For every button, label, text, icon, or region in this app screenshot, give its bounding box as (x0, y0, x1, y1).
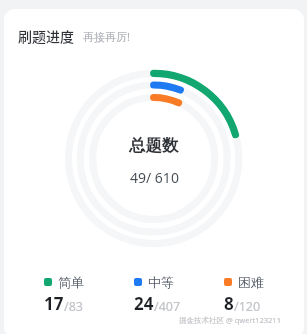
staticText: 8 (224, 292, 234, 315)
staticText: /83 (64, 298, 83, 315)
staticText: 17 (44, 292, 64, 315)
staticText: 中等 (148, 274, 174, 290)
staticText: 49/ 610 (130, 168, 179, 187)
button[interactable]: 中等 (134, 274, 224, 315)
staticText: 刷题进度 (18, 26, 74, 46)
staticText: 掘金技术社区 @ qwert123211 (179, 315, 281, 325)
staticText: 再接再厉! (83, 29, 130, 44)
button[interactable]: 困难 (224, 274, 304, 315)
button[interactable]: 刷题进度 (4, 9, 304, 334)
staticText: /407 (154, 298, 181, 315)
staticText: 简单 (58, 274, 84, 290)
staticText: 24 (134, 292, 154, 315)
staticText: /120 (234, 298, 261, 315)
button[interactable]: 简单 (44, 274, 134, 315)
staticText: 总题数 (129, 135, 179, 156)
staticText: 困难 (238, 274, 264, 290)
